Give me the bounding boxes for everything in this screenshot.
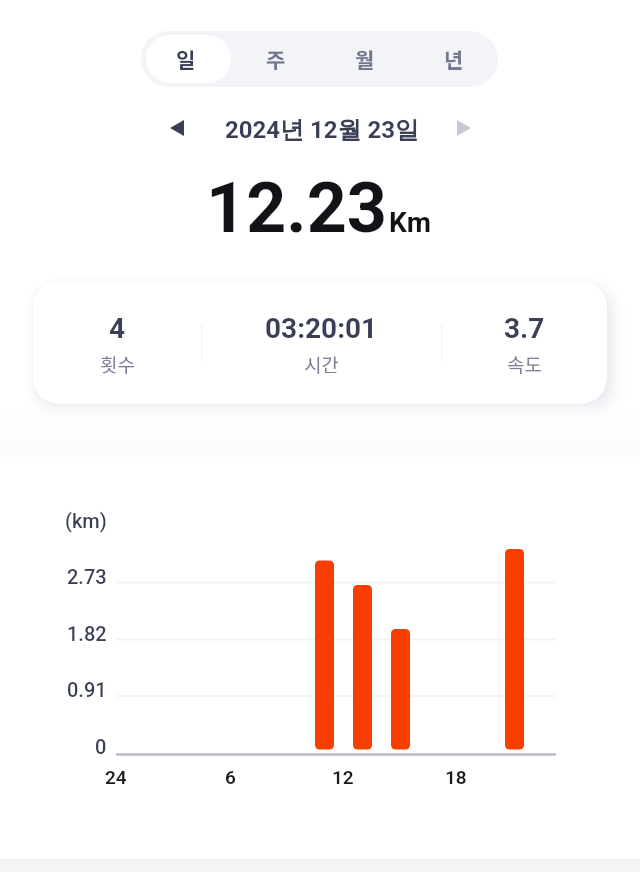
staticText: 년: [444, 44, 464, 74]
staticText: 2.73: [67, 565, 107, 588]
staticText: 속도: [507, 350, 542, 378]
button[interactable]: 월: [320, 31, 409, 87]
button[interactable]: 3.7: [442, 281, 607, 404]
staticText: 일: [176, 44, 196, 74]
staticText: 주: [266, 44, 286, 74]
staticText: 시간: [304, 350, 339, 378]
staticText: (km): [65, 509, 107, 532]
button[interactable]: 4: [33, 281, 201, 404]
staticText: 1.82: [67, 622, 107, 645]
staticText: 0.91: [67, 678, 107, 701]
staticText: Km: [389, 206, 431, 239]
staticText: 18: [445, 766, 467, 788]
staticText: 0: [95, 735, 107, 758]
button[interactable]: Previous day: [155, 106, 199, 150]
staticText: 12: [332, 766, 354, 788]
staticText: 횟수: [100, 350, 135, 378]
staticText: 2024년 12월 23일: [225, 115, 420, 145]
staticText: 월: [355, 44, 375, 74]
staticText: 4: [109, 312, 126, 345]
staticText: 3.7: [504, 312, 545, 345]
staticText: 12.23: [206, 167, 387, 247]
button[interactable]: 일: [141, 31, 231, 87]
button[interactable]: Next day: [442, 106, 486, 150]
button[interactable]: 년: [409, 31, 498, 87]
staticText: 24: [105, 766, 127, 788]
button[interactable]: 03:20:01: [202, 281, 441, 404]
button[interactable]: 주: [231, 31, 320, 87]
staticText: 03:20:01: [265, 312, 378, 345]
staticText: 6: [225, 766, 236, 788]
